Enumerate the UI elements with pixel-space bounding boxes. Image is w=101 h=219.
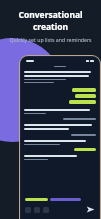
button[interactable]: Expand bbox=[43, 207, 49, 213]
button[interactable] bbox=[69, 100, 96, 104]
button[interactable]: Send bbox=[86, 205, 95, 214]
staticText: Conversational creation bbox=[0, 9, 101, 33]
staticText: Quickly set up lists and reminders bbox=[9, 36, 92, 43]
button[interactable] bbox=[74, 148, 96, 151]
button[interactable]: Add attachment bbox=[25, 207, 31, 213]
button[interactable] bbox=[75, 94, 96, 98]
button[interactable] bbox=[72, 88, 96, 92]
button[interactable]: Camera bbox=[34, 207, 40, 213]
